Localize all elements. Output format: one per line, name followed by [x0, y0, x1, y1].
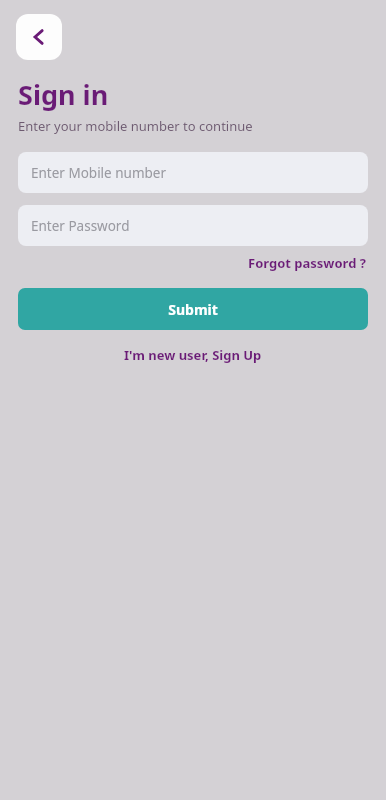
button[interactable]: Enter Password	[18, 205, 368, 246]
staticText: Forgot password ?	[248, 254, 366, 272]
button[interactable]: Enter Mobile number	[18, 152, 368, 193]
staticText: Submit	[168, 300, 218, 319]
staticText: Enter your mobile number to continue	[18, 117, 253, 135]
button[interactable]: I'm new user, Sign Up	[120, 344, 266, 366]
button[interactable]: Back	[16, 14, 62, 60]
staticText: I'm new user, Sign Up	[124, 346, 262, 364]
button[interactable]: Submit	[18, 288, 368, 330]
staticText: Sign in	[18, 76, 109, 113]
staticText: Enter Password	[31, 217, 130, 235]
button[interactable]: Forgot password ?	[246, 252, 368, 274]
staticText: Enter Mobile number	[31, 164, 167, 182]
